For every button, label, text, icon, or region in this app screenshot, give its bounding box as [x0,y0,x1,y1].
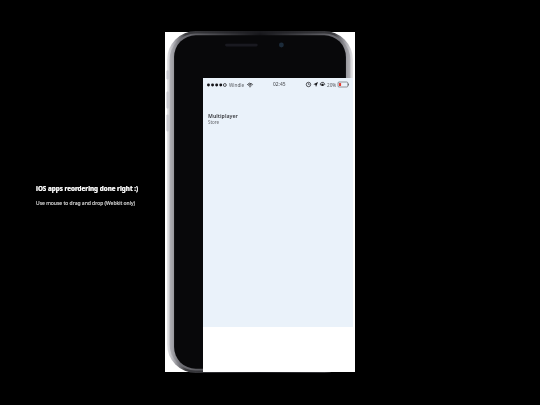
staticText: Use mouse to drag and drop (Webkit only) [36,200,136,207]
staticText: Store [208,119,220,125]
staticText: Multiplayer [208,112,238,119]
staticText: 20% [327,82,337,88]
button[interactable]: Windle [203,78,353,327]
staticText: Windle [229,82,245,88]
staticText: 02:45 [273,81,286,88]
staticText: iOS apps reordering done right :) [36,184,139,193]
